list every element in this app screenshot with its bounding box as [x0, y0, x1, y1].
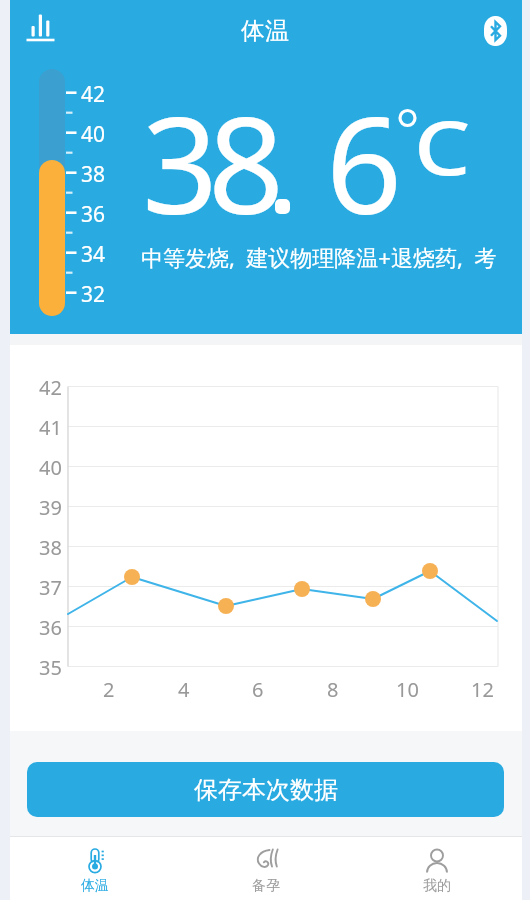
staticText: 36	[81, 200, 106, 229]
button[interactable]: 体温	[10, 837, 180, 900]
staticText: 体温	[81, 877, 109, 895]
staticText: 2	[103, 676, 115, 703]
staticText: 42	[81, 80, 106, 109]
staticText: 41	[39, 414, 62, 441]
staticText: 保存本次数据	[194, 775, 338, 805]
staticText: C	[414, 96, 470, 197]
staticText: 中等发烧, 建议物理降温+退烧药, 考	[141, 242, 497, 272]
staticText: 38	[81, 160, 106, 189]
staticText: 备孕	[252, 877, 280, 895]
button[interactable]: 保存本次数据	[27, 762, 504, 817]
staticText: 体温	[0, 16, 530, 46]
staticText: 37	[39, 574, 62, 601]
staticText: 12	[471, 676, 494, 703]
staticText: 4	[178, 676, 190, 703]
staticText: 39	[39, 494, 62, 521]
staticText: 6	[252, 676, 264, 703]
staticText: 我的	[423, 877, 451, 895]
button[interactable]: 备孕	[180, 837, 351, 900]
staticText: 40	[39, 454, 62, 481]
staticText: 36	[39, 614, 62, 641]
staticText: 6	[326, 72, 403, 253]
staticText: 42	[39, 374, 62, 401]
staticText: 3	[142, 72, 219, 253]
staticText: 34	[81, 240, 106, 269]
staticText: 32	[81, 280, 106, 309]
button[interactable]	[20, 10, 62, 50]
staticText: 38	[39, 534, 62, 561]
button[interactable]: 我的	[351, 837, 522, 900]
staticText: 35	[39, 654, 62, 681]
staticText: 8	[208, 72, 285, 253]
staticText: 10	[396, 676, 419, 703]
button[interactable]	[480, 12, 512, 50]
staticText: 40	[81, 120, 106, 149]
staticText: 8	[327, 676, 339, 703]
